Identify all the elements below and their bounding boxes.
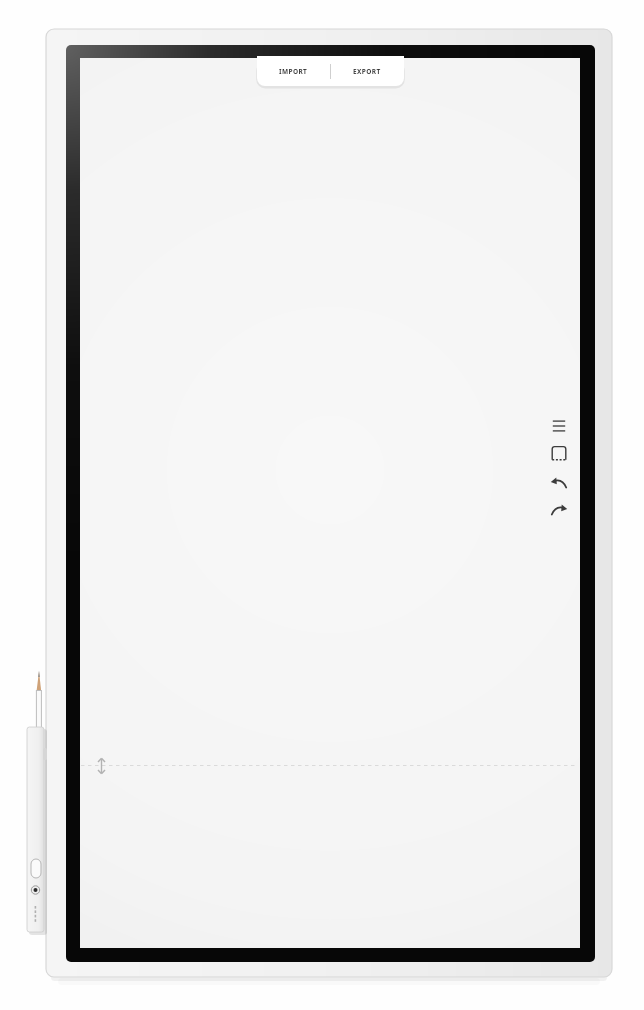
button[interactable] xyxy=(546,413,572,439)
button[interactable] xyxy=(546,440,572,466)
button[interactable] xyxy=(546,469,572,495)
staticText: IMPORT xyxy=(279,67,308,76)
button[interactable]: EXPORT xyxy=(330,57,404,86)
button[interactable] xyxy=(546,496,572,522)
staticText: EXPORT xyxy=(353,67,381,76)
button[interactable]: IMPORT xyxy=(257,57,330,86)
